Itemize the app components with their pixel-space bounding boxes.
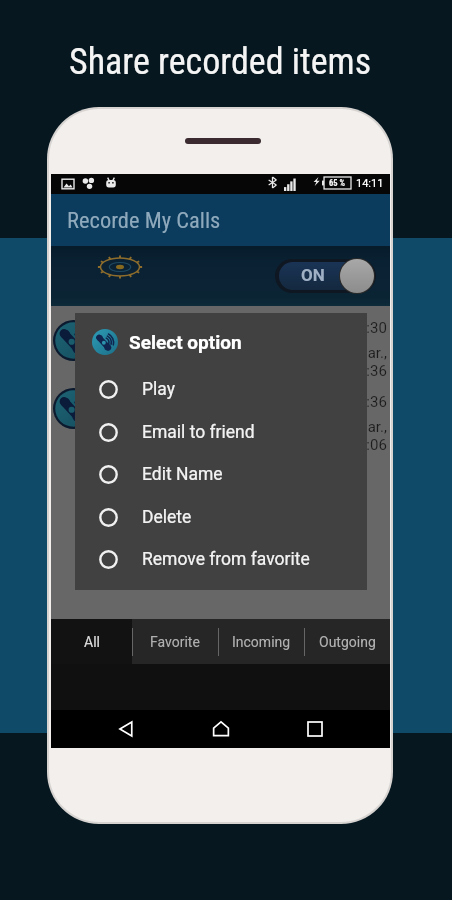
button[interactable]: Outgoing bbox=[304, 619, 390, 664]
staticText: Favorite bbox=[150, 634, 200, 650]
button[interactable]: Remove from favorite bbox=[75, 538, 367, 580]
button[interactable]: Delete bbox=[75, 496, 367, 538]
staticText: Play bbox=[142, 379, 175, 400]
staticText: Recorde My Calls bbox=[67, 207, 221, 233]
button[interactable]: Play bbox=[75, 368, 367, 410]
button[interactable]: Home bbox=[202, 710, 240, 748]
staticText: 00:00:30 bbox=[329, 319, 387, 337]
other: Recording indicator bbox=[94, 251, 146, 283]
staticText: 14:11 bbox=[356, 177, 384, 190]
staticText: 65 % bbox=[329, 178, 345, 188]
staticText: ON bbox=[301, 265, 325, 285]
button[interactable]: Back bbox=[107, 710, 145, 748]
button[interactable]: Edit Name bbox=[75, 453, 367, 495]
staticText: 12:04:36 bbox=[329, 362, 387, 380]
staticText: 09:41:06 bbox=[329, 436, 387, 454]
staticText: Email to friend bbox=[142, 422, 255, 443]
button[interactable]: Email to friend bbox=[75, 411, 367, 453]
staticText: Outgoing bbox=[319, 634, 376, 650]
staticText: All bbox=[84, 634, 100, 650]
staticText: 00:02:36 bbox=[329, 393, 387, 411]
staticText: Remove from favorite bbox=[142, 549, 310, 570]
staticText: Edit Name bbox=[142, 464, 223, 485]
staticText: Delete bbox=[142, 507, 192, 528]
staticText: Select option bbox=[129, 331, 242, 353]
staticText: 21 Mar., bbox=[334, 418, 387, 436]
staticText: Incoming bbox=[232, 634, 291, 650]
staticText: Share recorded items bbox=[69, 41, 372, 83]
button[interactable]: All bbox=[51, 619, 132, 664]
button[interactable]: Incoming bbox=[218, 619, 304, 664]
staticText: 22 Mar., bbox=[334, 344, 387, 362]
button[interactable]: Recording on bbox=[275, 259, 376, 293]
button[interactable]: Favorite bbox=[132, 619, 218, 664]
button[interactable]: Recents bbox=[296, 710, 334, 748]
